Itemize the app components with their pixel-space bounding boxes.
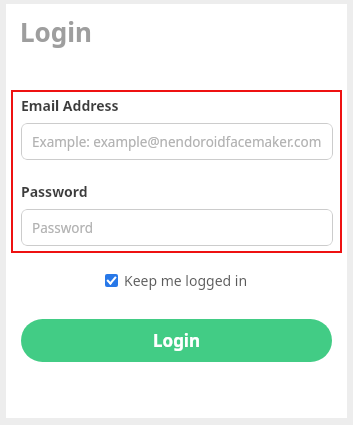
staticText: Password <box>32 219 94 237</box>
staticText: Login <box>153 329 201 352</box>
staticText: Login <box>20 14 92 49</box>
staticText: Keep me logged in <box>124 271 248 290</box>
button[interactable]: Example: example@nendoroidfacemaker.com <box>21 123 333 160</box>
button[interactable]: Login <box>21 319 332 362</box>
staticText: Example: example@nendoroidfacemaker.com <box>32 133 322 151</box>
staticText: Password <box>21 182 88 201</box>
button[interactable]: Password <box>21 209 333 246</box>
button[interactable]: Keep me logged in <box>105 271 248 290</box>
staticText: Email Address <box>21 96 119 115</box>
